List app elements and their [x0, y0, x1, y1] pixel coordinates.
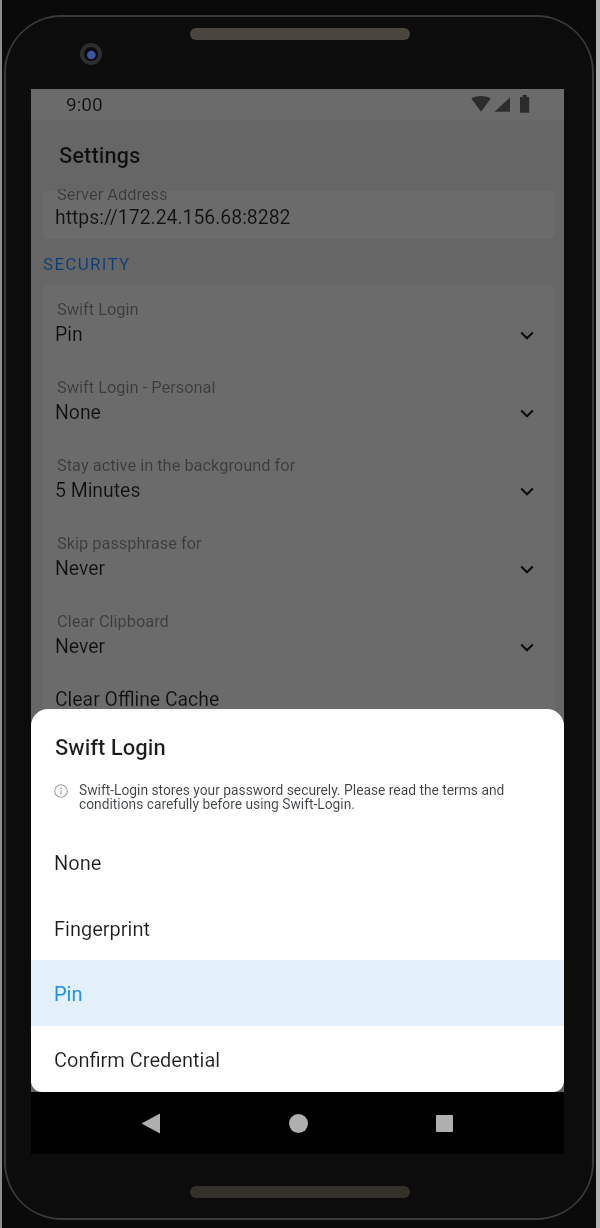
button[interactable]: Home [276, 1101, 320, 1145]
button[interactable]: Back [128, 1101, 172, 1145]
staticText: Clear Clipboard [57, 612, 169, 631]
button[interactable]: Pin [31, 960, 564, 1026]
button[interactable]: Fingerprint [31, 895, 564, 961]
staticText: Pin [54, 982, 83, 1005]
staticText: Never [55, 635, 106, 658]
staticText: Swift-Login stores your password securel… [79, 782, 505, 813]
staticText: Stay active in the background for [57, 456, 296, 475]
staticText: Never [55, 557, 106, 580]
staticText: Fingerprint [54, 917, 151, 940]
staticText: None [55, 401, 101, 424]
staticText: 9:00 [66, 93, 103, 115]
staticText: Pin [55, 323, 83, 346]
staticText: Swift Login [57, 300, 139, 319]
staticText: Swift Login - Personal [57, 378, 216, 397]
staticText: Confirm Credential [54, 1048, 221, 1071]
staticText: Settings [59, 143, 141, 169]
button[interactable]: None [31, 829, 564, 895]
staticText: SECURITY [43, 254, 131, 274]
staticText: Clear Offline Cache [55, 688, 220, 711]
staticText: Server Address [57, 189, 168, 204]
staticText: None [54, 851, 102, 874]
button[interactable]: Confirm Credential [31, 1026, 564, 1092]
button[interactable]: Recent apps [422, 1101, 466, 1145]
staticText: 5 Minutes [55, 479, 141, 502]
staticText: Skip passphrase for [57, 534, 202, 553]
staticText: https://172.24.156.68:8282 [55, 206, 291, 229]
staticText: Swift Login [55, 735, 166, 761]
